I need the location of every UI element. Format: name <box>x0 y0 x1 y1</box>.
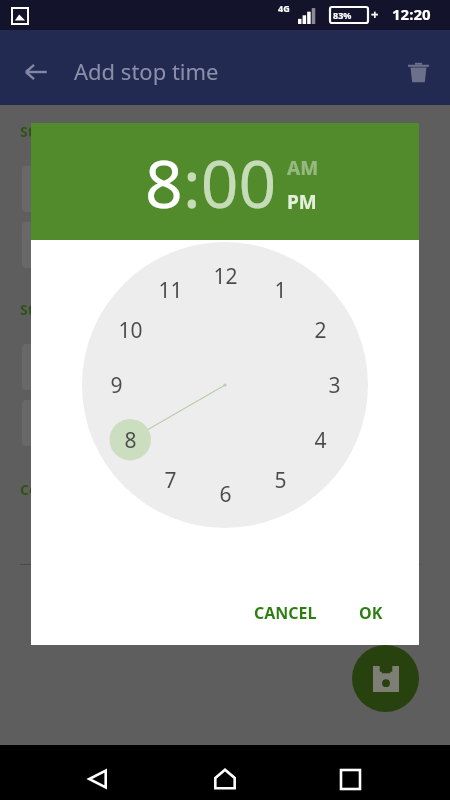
button[interactable]: 3 <box>317 370 351 400</box>
button[interactable]: Home <box>203 757 247 800</box>
staticText: 10 <box>118 316 143 345</box>
button[interactable] <box>31 240 419 580</box>
staticText: Comment <box>20 480 89 499</box>
staticText: 2 <box>314 316 327 345</box>
staticText: 5 <box>274 466 287 495</box>
staticText: 11 <box>158 276 183 305</box>
staticText: 6 <box>219 480 232 509</box>
button[interactable]: PM <box>287 189 317 215</box>
button[interactable]: 2 <box>303 315 337 345</box>
staticText: Stop time <box>20 300 88 319</box>
button[interactable]: CANCEL <box>242 594 329 632</box>
staticText: Start time <box>20 122 91 141</box>
staticText: Add stop time <box>74 56 219 86</box>
button[interactable]: 8 <box>113 425 147 455</box>
button[interactable]: Recents <box>328 757 372 800</box>
button[interactable]: 6 <box>208 479 242 509</box>
button[interactable]: 11 <box>153 275 187 305</box>
staticText: 4G <box>278 2 290 14</box>
staticText: 3 <box>328 371 341 400</box>
staticText: 7 <box>164 466 177 495</box>
staticText: 12 <box>213 262 238 291</box>
button[interactable]: 10 <box>113 315 147 345</box>
staticText: 4 <box>314 426 327 455</box>
button[interactable]: 12 <box>208 261 242 291</box>
button[interactable]: 1 <box>263 275 297 305</box>
button[interactable]: OK <box>347 594 395 632</box>
button[interactable]: Back <box>76 757 120 800</box>
staticText: OK <box>359 602 383 624</box>
button[interactable]: Back <box>14 50 58 94</box>
staticText: 83% <box>333 9 352 21</box>
button[interactable]: 7 <box>153 465 187 495</box>
button[interactable]: Save <box>352 645 419 712</box>
staticText: 8 <box>124 426 137 455</box>
button[interactable]: Delete <box>396 50 440 94</box>
staticText: + <box>371 5 379 23</box>
staticText: 12:20 <box>392 4 431 24</box>
staticText: 1 <box>274 276 287 305</box>
button[interactable]: :00 <box>183 137 277 227</box>
button[interactable]: 8 <box>145 137 183 227</box>
button[interactable]: AM <box>287 155 319 181</box>
button[interactable]: 9 <box>99 370 133 400</box>
button[interactable]: 4 <box>303 425 337 455</box>
staticText: 9 <box>110 371 123 400</box>
staticText: CANCEL <box>254 602 317 624</box>
button[interactable]: 5 <box>263 465 297 495</box>
